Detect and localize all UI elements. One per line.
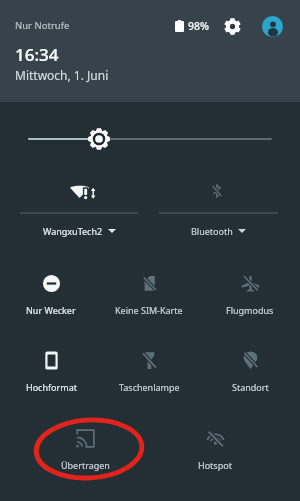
- staticText: 98%: [188, 19, 209, 33]
- button[interactable]: Bluetooth off: [159, 176, 278, 244]
- button[interactable]: Portrait: [3, 340, 99, 392]
- button[interactable]: No SIM card: [101, 263, 197, 315]
- staticText: Nur Notrufe: [15, 19, 70, 32]
- button[interactable]: Alarms only: [3, 263, 99, 315]
- button[interactable]: Brightness: [88, 128, 110, 150]
- button[interactable]: Flashlight: [101, 340, 197, 392]
- staticText: Flugmodus: [226, 304, 274, 316]
- button[interactable]: Wi-Fi WangxuTech2: [20, 176, 138, 244]
- staticText: Nur Wecker: [26, 304, 76, 316]
- staticText: Keine SIM-Karte: [115, 304, 183, 316]
- button[interactable]: Cast: [37, 418, 133, 470]
- staticText: Mittwoch, 1. Juni: [15, 67, 109, 83]
- staticText: Hochformat: [26, 381, 77, 393]
- staticText: Taschenlampe: [119, 381, 180, 393]
- button[interactable]: Settings: [221, 15, 243, 37]
- button[interactable]: Hotspot: [167, 418, 263, 470]
- staticText: 16:34: [15, 43, 59, 66]
- staticText: Übertragen: [61, 459, 110, 471]
- staticText: Standort: [232, 381, 269, 393]
- staticText: Bluetooth: [191, 225, 233, 237]
- staticText: WangxuTech2: [43, 225, 103, 237]
- button[interactable]: Airplane mode: [202, 263, 298, 315]
- staticText: Hotspot: [198, 459, 232, 471]
- button[interactable]: Location: [202, 340, 298, 392]
- button[interactable]: Open user profile: [262, 16, 283, 37]
